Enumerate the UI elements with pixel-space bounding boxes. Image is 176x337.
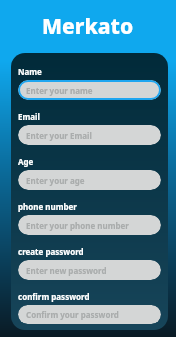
button[interactable]: Enter new password: [18, 260, 161, 280]
button[interactable]: Enter your phone number: [18, 215, 161, 235]
staticText: Age: [18, 156, 34, 167]
staticText: Enter your age: [26, 175, 85, 186]
staticText: Confirm your password: [26, 309, 119, 320]
staticText: Enter your phone number: [26, 220, 129, 231]
staticText: Name: [18, 66, 42, 77]
staticText: create password: [18, 246, 84, 257]
staticText: Enter your name: [26, 85, 93, 96]
button[interactable]: Enter your Email: [18, 125, 161, 145]
staticText: Enter new password: [26, 265, 107, 276]
staticText: Merkato: [42, 12, 134, 41]
button[interactable]: Enter your name: [18, 80, 161, 100]
staticText: Email: [18, 111, 40, 122]
staticText: phone number: [18, 201, 77, 212]
button[interactable]: Confirm your password: [18, 305, 161, 324]
staticText: confirm password: [18, 291, 90, 302]
button[interactable]: Enter your age: [18, 170, 161, 190]
staticText: Enter your Email: [26, 130, 92, 141]
